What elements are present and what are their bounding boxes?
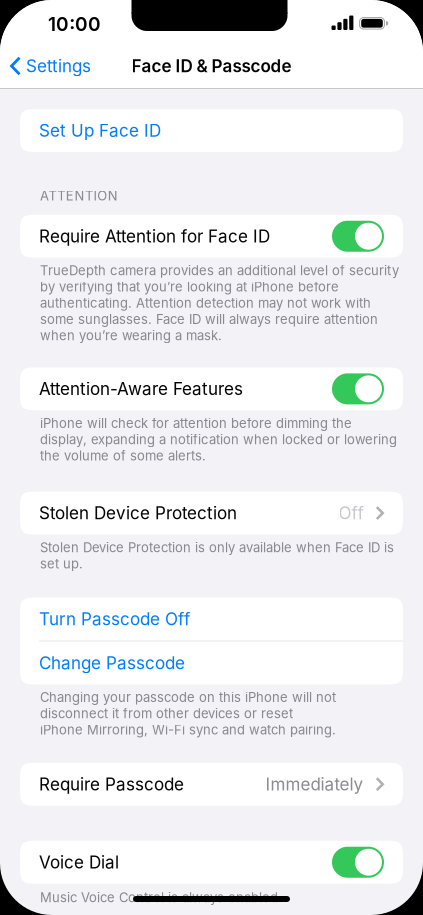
staticText: Settings <box>26 56 91 76</box>
staticText: Immediately <box>265 774 363 794</box>
staticText: Face ID & Passcode <box>131 56 291 76</box>
button[interactable]: Voice Dial <box>332 847 384 878</box>
button[interactable]: Turn Passcode Off <box>20 597 403 640</box>
staticText: when you’re wearing a mask. <box>40 328 222 343</box>
staticText: Require Attention for Face ID <box>39 226 270 246</box>
button[interactable]: Change Passcode <box>20 641 403 684</box>
staticText: iPhone Mirroring, Wi-Fi sync and watch p… <box>40 722 336 738</box>
staticText: Music Voice Control is always enabled. <box>40 890 282 905</box>
staticText: Stolen Device Protection is only availab… <box>40 540 394 555</box>
staticText: TrueDepth camera provides an additional … <box>40 263 399 278</box>
staticText: Turn Passcode Off <box>39 609 190 629</box>
staticText: by verifying that you’re looking at iPho… <box>40 279 339 295</box>
button[interactable]: Require Attention for Face ID <box>332 221 384 252</box>
staticText: disconnect it from other devices or rese… <box>40 706 293 721</box>
staticText: Off <box>338 503 363 523</box>
staticText: iPhone will check for attention before d… <box>40 415 352 431</box>
button[interactable]: Attention-Aware Features <box>332 373 384 404</box>
button[interactable]: Back to Settings <box>0 56 91 76</box>
button[interactable]: Stolen Device Protection <box>20 492 403 535</box>
staticText: Require Passcode <box>39 774 184 794</box>
staticText: ATTENTION <box>40 188 118 204</box>
staticText: set up. <box>40 556 83 571</box>
staticText: Voice Dial <box>39 852 119 872</box>
staticText: Set Up Face ID <box>39 120 161 141</box>
button[interactable]: Require Passcode <box>20 763 403 806</box>
staticText: authenticating. Attention detection may … <box>40 295 371 311</box>
staticText: some sunglasses. Face ID will always req… <box>40 311 378 327</box>
staticText: the volume of some alerts. <box>40 448 206 463</box>
staticText: display, expanding a notification when l… <box>40 432 397 447</box>
staticText: Stolen Device Protection <box>39 503 237 523</box>
button[interactable]: Set Up Face ID <box>20 109 403 152</box>
staticText: 10:00 <box>48 12 101 35</box>
staticText: Attention-Aware Features <box>39 379 243 399</box>
staticText: Change Passcode <box>39 653 185 673</box>
staticText: Changing your passcode on this iPhone wi… <box>40 689 336 705</box>
